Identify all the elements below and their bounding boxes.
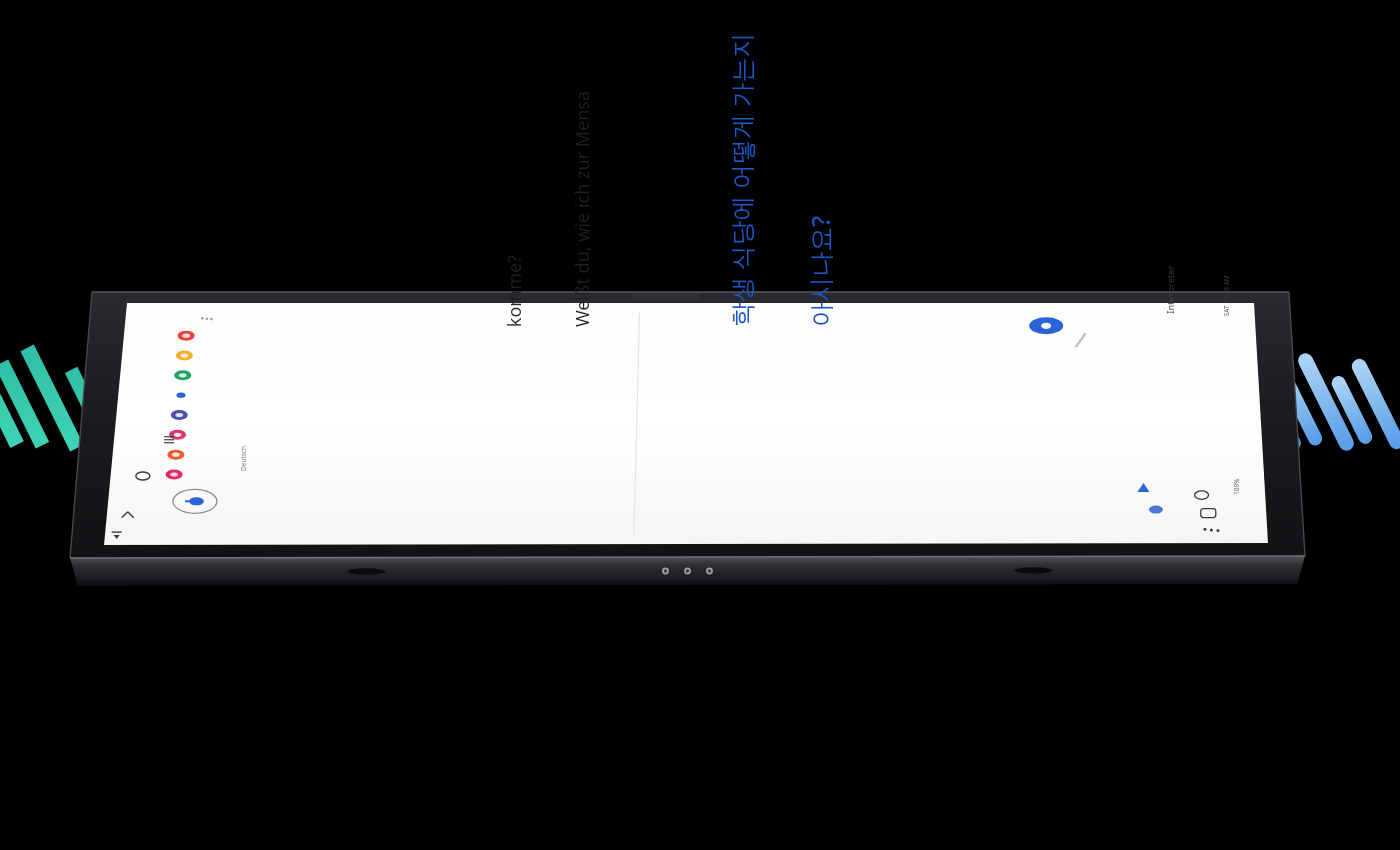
button[interactable]: Galaxy Tab Interpreter mode — [0, 0, 1400, 850]
